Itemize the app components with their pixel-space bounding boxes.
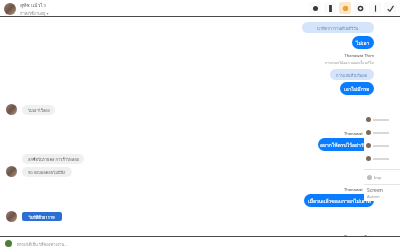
button[interactable]: การแสนสีไม่ในออ <box>330 69 374 80</box>
button[interactable]: Imp <box>364 170 400 184</box>
button[interactable]: Video call <box>309 2 321 14</box>
staticText: สุทัช แม้วไว <box>20 1 46 9</box>
staticText: การแสนสีไม่ในออ <box>336 72 368 78</box>
staticText: อยากให้ครบไว้อย่าวันอย <box>320 141 373 149</box>
button[interactable]: นาทีอาการานดีไม่ดีวีวัน <box>302 22 374 33</box>
button[interactable]: More options <box>369 2 381 14</box>
button[interactable] <box>364 126 400 139</box>
staticText: ลกชื่อในรายคล การก้าไหลอย <box>28 156 79 162</box>
button[interactable]: Phone call <box>324 2 336 14</box>
button[interactable] <box>364 152 400 165</box>
staticText: Thanawat Thim <box>344 234 374 236</box>
staticText: Screen <box>367 187 383 194</box>
button[interactable]: 90.00บอลคอบไม่มีปัง <box>22 167 72 177</box>
button[interactable]: เมื่อวนแล้วของงรายกไม่เอาต <box>304 194 374 207</box>
button[interactable]: Search <box>354 2 366 14</box>
staticText: เอาไม่มีกรอ <box>344 85 370 93</box>
staticText: กำลังใช้งานอยู่ ▾ <box>20 10 49 16</box>
button[interactable]: เอาไม่มีกรอ <box>340 82 374 95</box>
button[interactable] <box>364 139 400 152</box>
staticText: ไม่เอา <box>356 39 370 47</box>
staticText: นาทีอาการานดีไม่ดีวีวัน <box>317 25 359 31</box>
button[interactable]: Screen <box>364 185 400 201</box>
button[interactable]: สุทัช แม้วไว <box>4 1 49 16</box>
staticText: ไม่เอาไว้ลอง <box>28 107 50 113</box>
staticText: 90.00บอลคอบไม่มีปัง <box>28 169 66 175</box>
staticText: พรรมได้เป็น ให้ของทางงาน... <box>17 241 68 247</box>
button[interactable]: ลกชื่อในรายคล การก้าไหลอย <box>22 154 84 164</box>
staticText: เมื่อวนแล้วของงรายกไม่เอาต <box>308 197 371 205</box>
button[interactable]: ไม่เอาไว้ลอง <box>22 105 55 115</box>
staticText: Autom <box>367 194 380 199</box>
staticText: ไม่ให้ด้วย1119 <box>29 214 55 220</box>
button[interactable]: Notifications <box>339 2 351 14</box>
button[interactable]: อยากให้ครบไว้อย่าวันอย <box>318 138 374 151</box>
button[interactable]: ไม่เอา <box>352 36 374 49</box>
button[interactable] <box>364 113 400 126</box>
staticText: Imp <box>374 175 382 180</box>
button[interactable]: พรรมได้เป็น ให้ของทางงาน... <box>5 237 395 250</box>
staticText: Thanawat Thim <box>344 131 374 136</box>
staticText: การกรอกไม้ออก นออกเจ็ง แก้ไข <box>325 60 374 66</box>
staticText: Thanawat Thim <box>344 187 374 192</box>
button[interactable]: Done <box>384 2 396 14</box>
staticText: Thanawat Thim <box>344 53 374 58</box>
button[interactable]: ไม่ให้ด้วย1119 <box>22 212 62 221</box>
